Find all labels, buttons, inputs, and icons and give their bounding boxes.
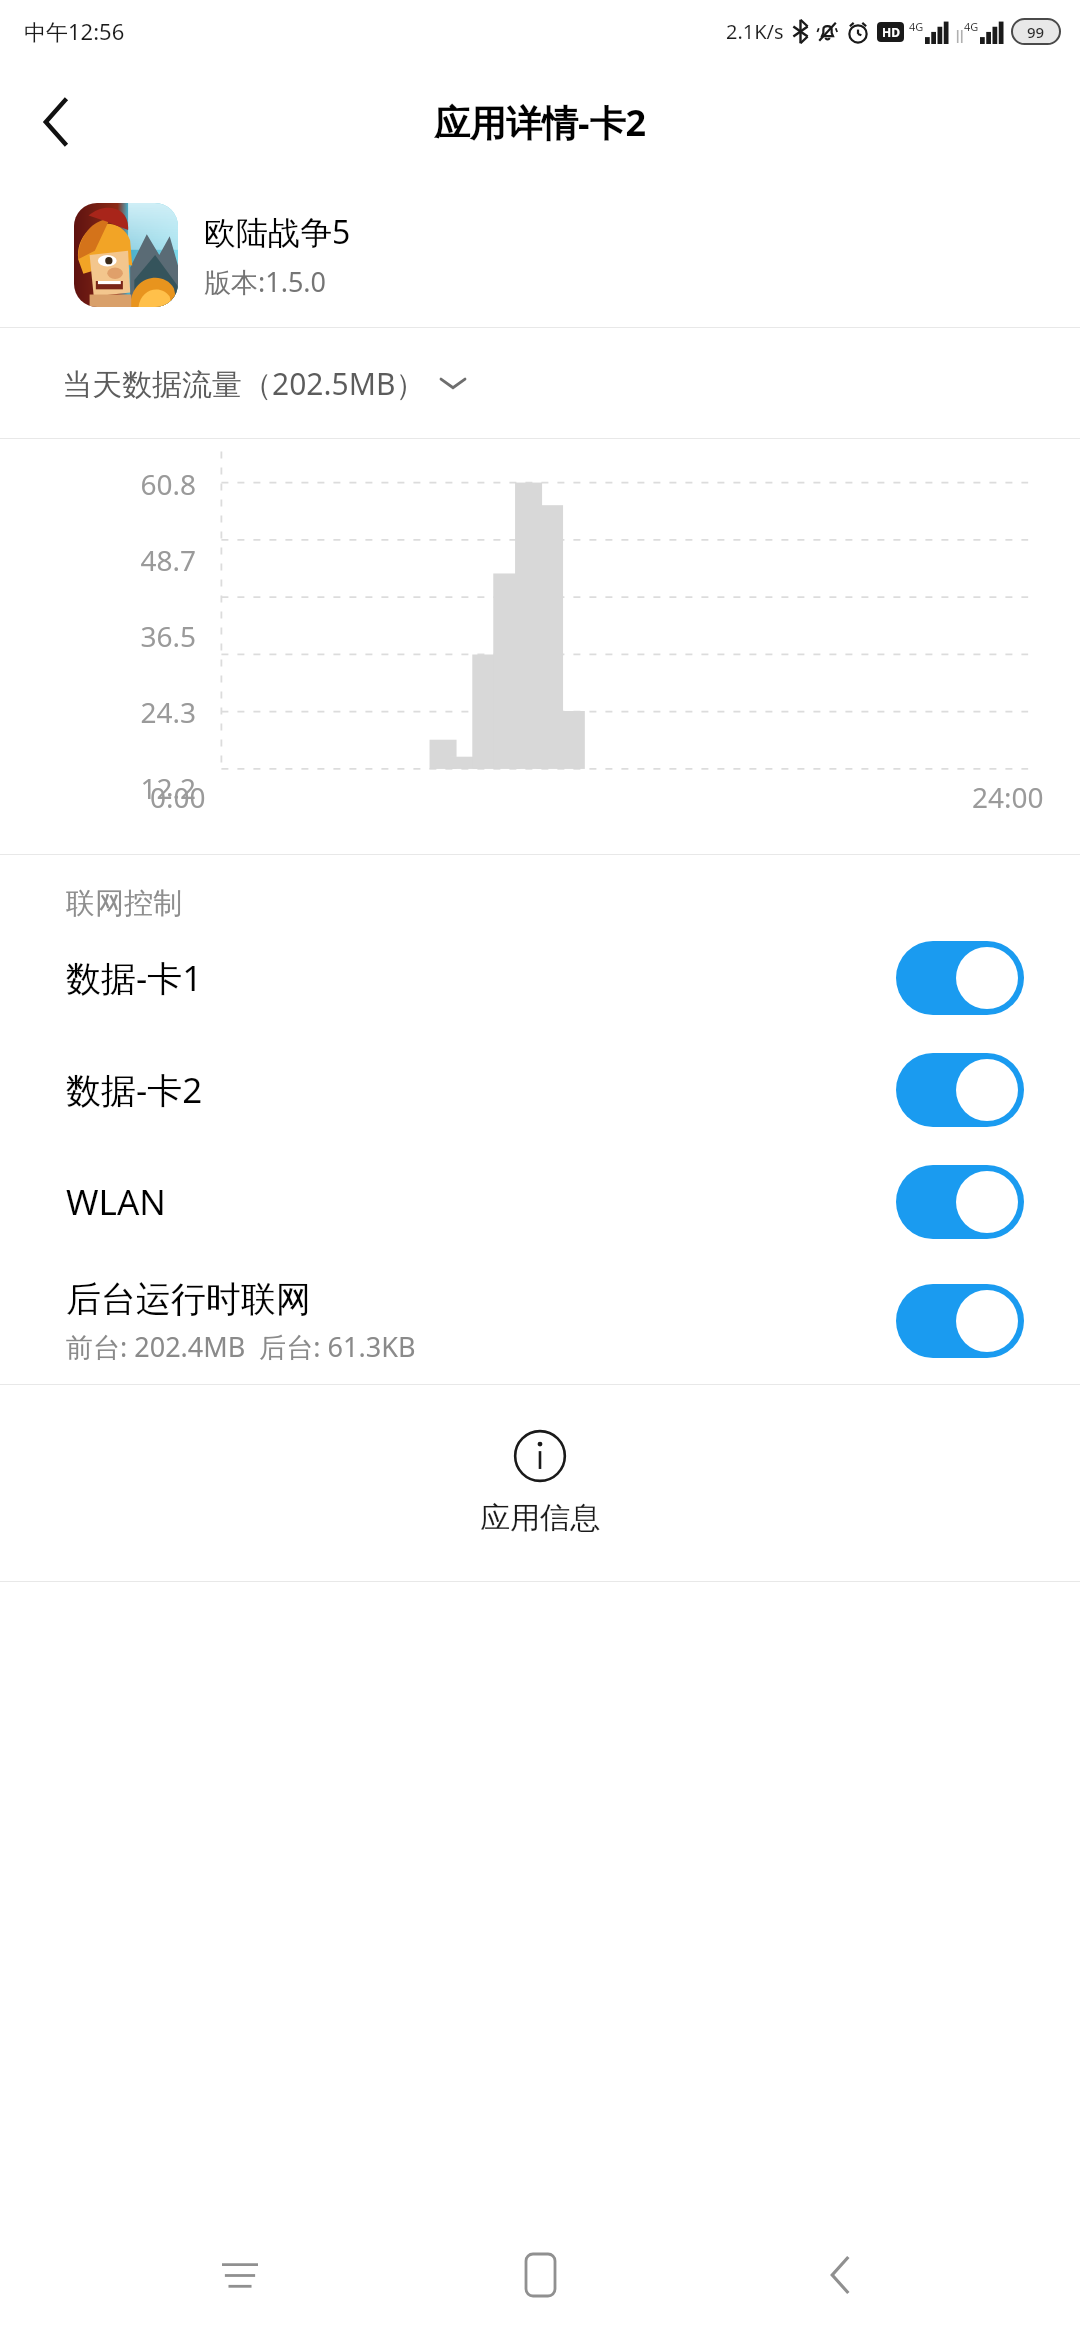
staticText: 48.7 [30,541,196,579]
button[interactable]: 数据-卡1 [0,922,1080,1034]
staticText: 数据-卡2 [66,1066,896,1114]
staticText: 99 [1027,22,1045,42]
button[interactable]: Recents [180,2215,300,2335]
staticText: 前台: 202.4MB 后台: 61.3KB [66,1328,416,1365]
staticText: 欧陆战争5 [204,210,351,254]
staticText: 数据-卡1 [66,954,896,1002]
staticText: 联网控制 [66,885,182,922]
staticText: WLAN [66,1178,896,1226]
staticText: 版本:1.5.0 [204,263,327,300]
staticText: 2.1K/s [726,18,784,45]
staticText: 12.2 [30,769,196,807]
button[interactable]: 当天数据流量（202.5MB） [0,328,1080,438]
button[interactable]: 欧陆战争5 [0,182,1080,327]
staticText: 4G [964,19,979,34]
staticText: HD [882,24,900,40]
staticText: 后台运行时联网 [66,1277,311,1321]
button[interactable]: Toggle [896,1053,1024,1127]
staticText: 中午12:56 [24,16,125,46]
button[interactable]: WLAN [0,1146,1080,1258]
button[interactable]: Toggle [896,941,1024,1015]
staticText: 24.3 [30,693,196,731]
button[interactable]: 数据-卡2 [0,1034,1080,1146]
staticText: 4G [909,19,924,34]
button[interactable]: 后台运行时联网 [0,1258,1080,1384]
button[interactable]: 应用信息 [0,1385,1080,1581]
button[interactable]: Toggle [896,1165,1024,1239]
staticText: 当天数据流量（202.5MB） [62,363,426,404]
staticText: 24:00 [972,778,1044,816]
staticText: 应用详情-卡2 [434,98,647,147]
button[interactable]: Back [18,84,94,160]
button[interactable]: Back [780,2215,900,2335]
button[interactable]: Toggle [896,1284,1024,1358]
staticText: 60.8 [30,465,196,503]
staticText: 应用信息 [480,1499,600,1537]
staticText: 36.5 [30,617,196,655]
staticText: 0:00 [150,778,206,816]
button[interactable]: Home [480,2215,600,2335]
